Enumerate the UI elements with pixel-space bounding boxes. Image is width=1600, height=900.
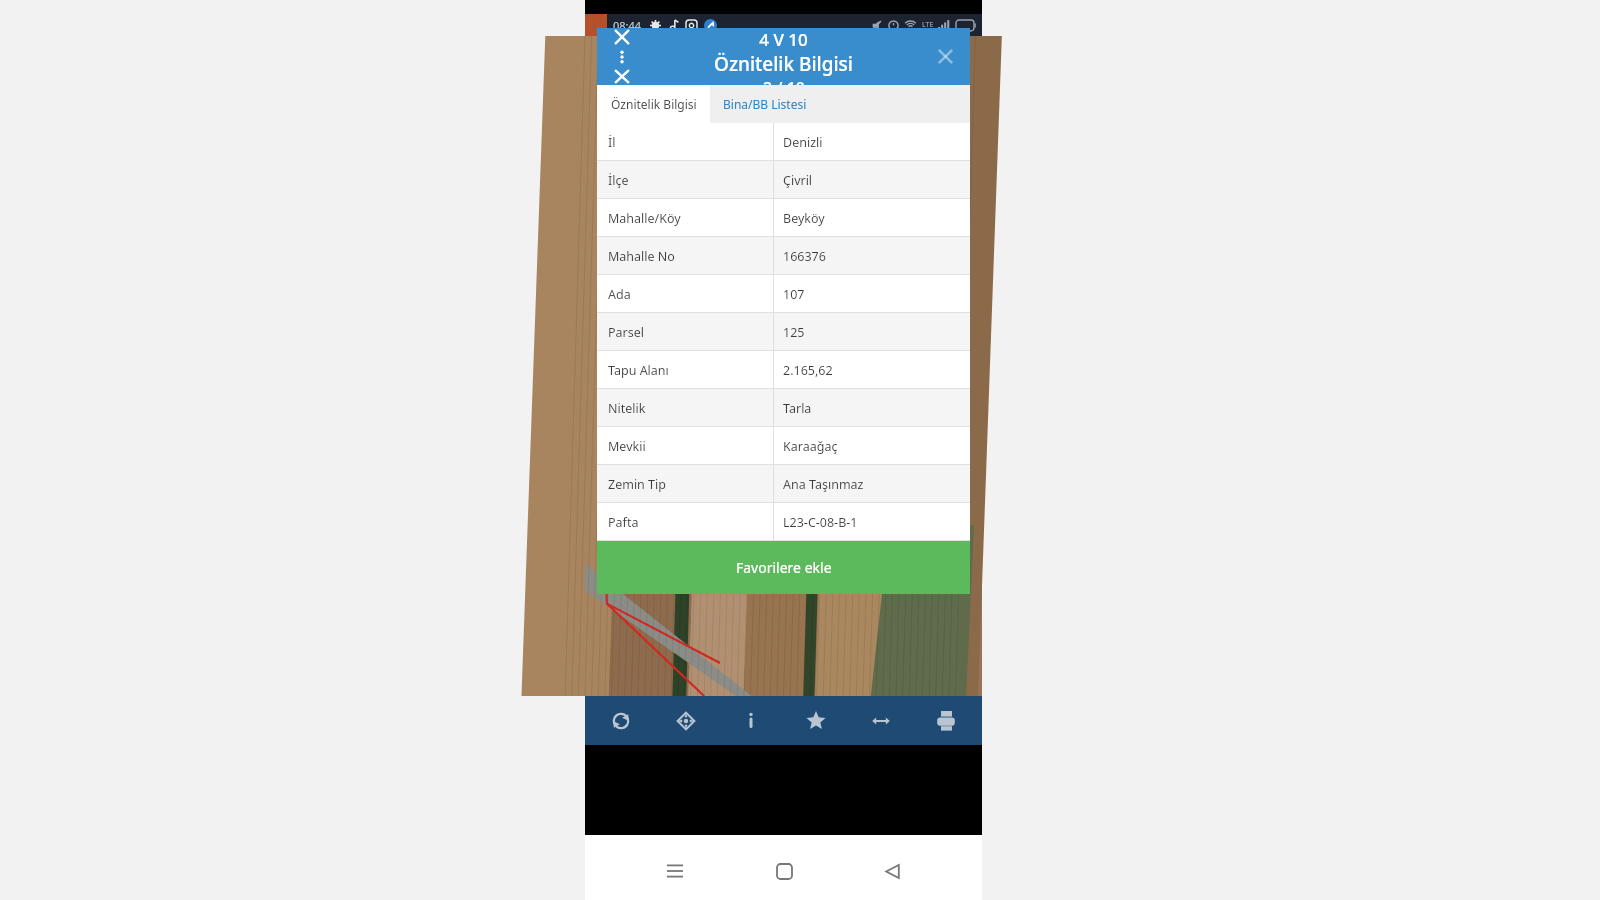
staticText: Parsel [608,324,645,341]
button[interactable]: Nitelik [597,389,970,427]
button[interactable]: Kapat [937,48,954,65]
staticText: 166376 [783,248,826,265]
button[interactable]: Favorilere ekle [597,541,970,594]
staticText: İlçe [608,172,629,189]
button[interactable]: Bilgi [729,699,773,743]
staticText: Zemin Tip [608,476,666,493]
staticText: Ana Taşınmaz [783,476,864,493]
button[interactable]: İl [597,123,970,161]
staticText: Beyköy [783,210,825,227]
button[interactable]: Pafta [597,503,970,541]
button[interactable]: Ada [597,275,970,313]
button[interactable]: Temizle [613,68,631,85]
staticText: Ada [608,286,631,303]
staticText: 2.165,62 [783,362,833,379]
button[interactable]: Parsel [597,313,970,351]
button[interactable]: Ana ekran [766,853,802,889]
button[interactable]: Öznitelik Bilgisi [597,85,710,123]
staticText: Öznitelik Bilgisi [611,96,697,112]
staticText: 2 / 10 [763,77,805,85]
button[interactable]: Geri [874,853,910,889]
staticText: Nitelik [608,400,646,417]
staticText: Mahalle No [608,248,675,265]
staticText: Favorilere ekle [736,558,832,577]
staticText: Tapu Alanı [608,362,669,379]
button[interactable]: Bina/BB Listesi [710,85,970,123]
button[interactable]: Zemin Tip [597,465,970,503]
staticText: Mevkii [608,438,646,455]
staticText: Tarla [783,400,812,417]
button[interactable]: Yenile [599,699,643,743]
staticText: 125 [783,324,805,341]
staticText: 08:44 [613,18,642,33]
staticText: Öznitelik Bilgisi [714,51,853,77]
button[interactable]: Mahalle/Köy [597,199,970,237]
button[interactable]: Ölç [859,699,903,743]
staticText: L23-C-08-B-1 [783,514,858,531]
staticText: Karaağaç [783,438,838,455]
staticText: Bina/BB Listesi [723,96,807,112]
staticText: Pafta [608,514,639,531]
staticText: 107 [783,286,805,303]
staticText: Çivril [783,172,813,189]
staticText: İl [608,134,616,151]
staticText: LTE [922,20,934,30]
button[interactable]: Tapu Alanı [597,351,970,389]
button[interactable]: Yazdır [924,699,968,743]
button[interactable]: Menü [613,49,631,65]
staticText: Mahalle/Köy [608,210,681,227]
button[interactable]: İlçe [597,161,970,199]
button[interactable]: Kapat [613,28,631,46]
button[interactable]: Favoriler [794,699,838,743]
button[interactable]: Mahalle No [597,237,970,275]
staticText: 4 V 10 [759,28,808,51]
button[interactable]: Mevkii [597,427,970,465]
button[interactable]: Son uygulamalar [657,853,693,889]
staticText: Denizli [783,134,823,151]
button[interactable]: Taşı [664,699,708,743]
